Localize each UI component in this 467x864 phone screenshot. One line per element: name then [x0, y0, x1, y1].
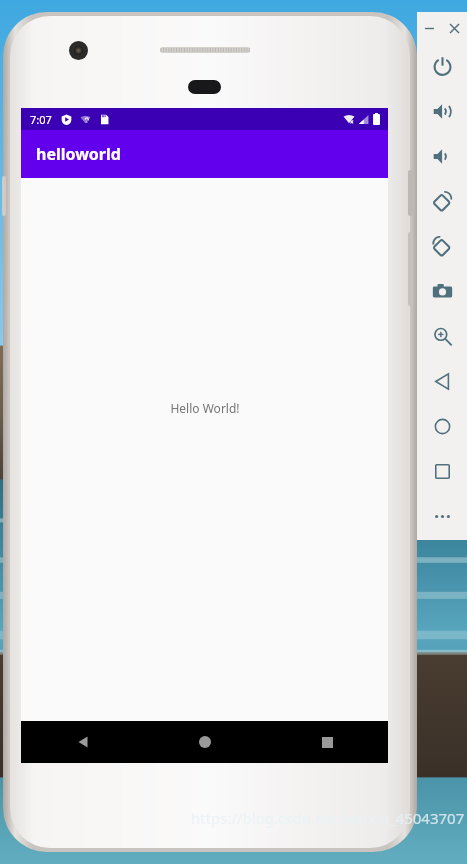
- button[interactable]: More: [417, 494, 467, 539]
- button[interactable]: Minimize: [417, 12, 442, 44]
- staticText: https://blog.csdn.net/weixin_45043707: [191, 808, 465, 828]
- button[interactable]: Volume down: [417, 134, 467, 179]
- button[interactable]: Overview: [417, 449, 467, 494]
- button[interactable]: Back: [21, 721, 144, 763]
- button[interactable]: Home: [144, 721, 266, 763]
- button[interactable]: Home: [417, 404, 467, 449]
- staticText: helloworld: [36, 143, 121, 165]
- staticText: 7:07: [30, 112, 52, 127]
- button[interactable]: Recent apps: [266, 721, 388, 763]
- staticText: Hello World!: [170, 400, 240, 416]
- button[interactable]: Back: [417, 359, 467, 404]
- button[interactable]: Take screenshot: [417, 269, 467, 314]
- button[interactable]: Zoom: [417, 314, 467, 359]
- button[interactable]: Close: [442, 12, 467, 44]
- button[interactable]: Rotate right: [417, 224, 467, 269]
- button[interactable]: Volume up: [417, 89, 467, 134]
- button[interactable]: Power: [417, 44, 467, 89]
- button[interactable]: Rotate left: [417, 179, 467, 224]
- button[interactable]: helloworld: [21, 130, 388, 178]
